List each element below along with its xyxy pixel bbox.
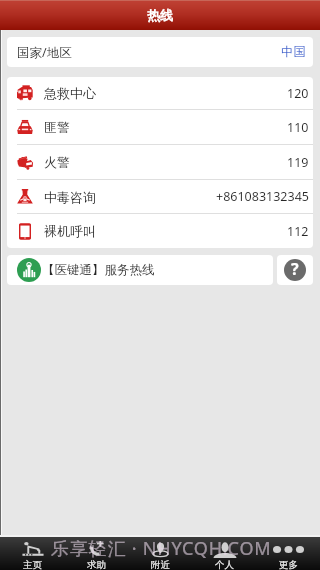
button[interactable]: 火警: [7, 145, 313, 179]
staticText: 求助: [87, 559, 106, 570]
staticText: 国家/地区: [17, 44, 72, 61]
button[interactable]: 附近: [128, 537, 192, 570]
staticText: 乐享轻汇 · NHYCQH.COM: [51, 536, 272, 561]
staticText: 个人: [215, 559, 234, 570]
button[interactable]: 裸机呼叫: [7, 214, 313, 248]
staticText: 匪警: [44, 119, 70, 135]
staticText: 119: [287, 154, 309, 171]
staticText: 【医键通】服务热线: [42, 262, 155, 278]
button[interactable]: 中毒咨询: [7, 180, 313, 213]
button[interactable]: 个人: [192, 537, 256, 570]
staticText: 热线: [147, 7, 173, 23]
button[interactable]: 主页: [0, 537, 64, 570]
button[interactable]: 国家/地区: [7, 37, 313, 67]
staticText: ?: [291, 259, 299, 280]
button[interactable]: 【医键通】服务热线: [7, 255, 273, 285]
staticText: 急救中心: [44, 85, 96, 101]
staticText: 裸机呼叫: [44, 223, 96, 239]
staticText: 火警: [44, 154, 70, 170]
button[interactable]: 匪警: [7, 110, 313, 144]
button[interactable]: Help: [277, 255, 313, 285]
button[interactable]: 求助: [64, 537, 128, 570]
staticText: 附近: [151, 559, 170, 570]
staticText: 中国: [281, 44, 306, 60]
staticText: +861083132345: [216, 188, 309, 205]
staticText: 120: [287, 85, 309, 102]
staticText: 更多: [279, 559, 298, 570]
staticText: 112: [287, 223, 309, 240]
button[interactable]: 更多: [256, 537, 320, 570]
staticText: 110: [287, 119, 309, 136]
staticText: 主页: [23, 559, 42, 570]
button[interactable]: 急救中心: [7, 77, 313, 109]
staticText: 中毒咨询: [44, 189, 96, 205]
